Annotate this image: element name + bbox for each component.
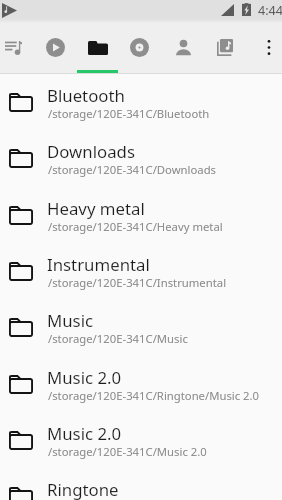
button[interactable]: Music [0, 299, 282, 355]
staticText: /storage/120E-341C/Music 2.0 [48, 444, 207, 459]
staticText: Heavy metal [47, 197, 145, 220]
button[interactable]: Folders [78, 23, 118, 72]
staticText: /storage/120E-341C/Heavy metal [48, 219, 223, 234]
staticText: /storage/120E-341C/Bluetooth [48, 106, 210, 121]
staticText: /storage/120E-341C/Instrumental [48, 275, 227, 290]
button[interactable]: Albums [119, 23, 159, 72]
staticText: /storage/120E-341C/Downloads [48, 162, 217, 177]
staticText: /storage/120E-341C/Music [48, 331, 188, 346]
staticText: Downloads [47, 140, 135, 163]
button[interactable]: Bluetooth [0, 74, 282, 130]
staticText: Instrumental [47, 253, 150, 276]
button[interactable]: Ringtone [0, 468, 282, 500]
button[interactable]: Heavy metal [0, 187, 282, 243]
button[interactable]: Instrumental [0, 243, 282, 299]
button[interactable]: Playlist [0, 23, 33, 72]
staticText: Ringtone [47, 478, 119, 500]
button[interactable]: Music 2.0 [0, 412, 282, 468]
button[interactable]: Library [205, 23, 245, 72]
button[interactable]: Artists [163, 23, 203, 72]
staticText: Music 2.0 [47, 366, 122, 389]
staticText: /storage/120E-341C/Ringtone/Music 2.0 [48, 388, 260, 403]
button[interactable]: More options [249, 23, 282, 72]
staticText: Music 2.0 [47, 422, 122, 445]
staticText: 4:44 [258, 2, 282, 19]
button[interactable]: Music 2.0 [0, 356, 282, 412]
button[interactable]: Downloads [0, 130, 282, 186]
button[interactable]: Now playing [35, 23, 75, 72]
staticText: Music [47, 309, 94, 332]
staticText: Bluetooth [47, 84, 125, 107]
